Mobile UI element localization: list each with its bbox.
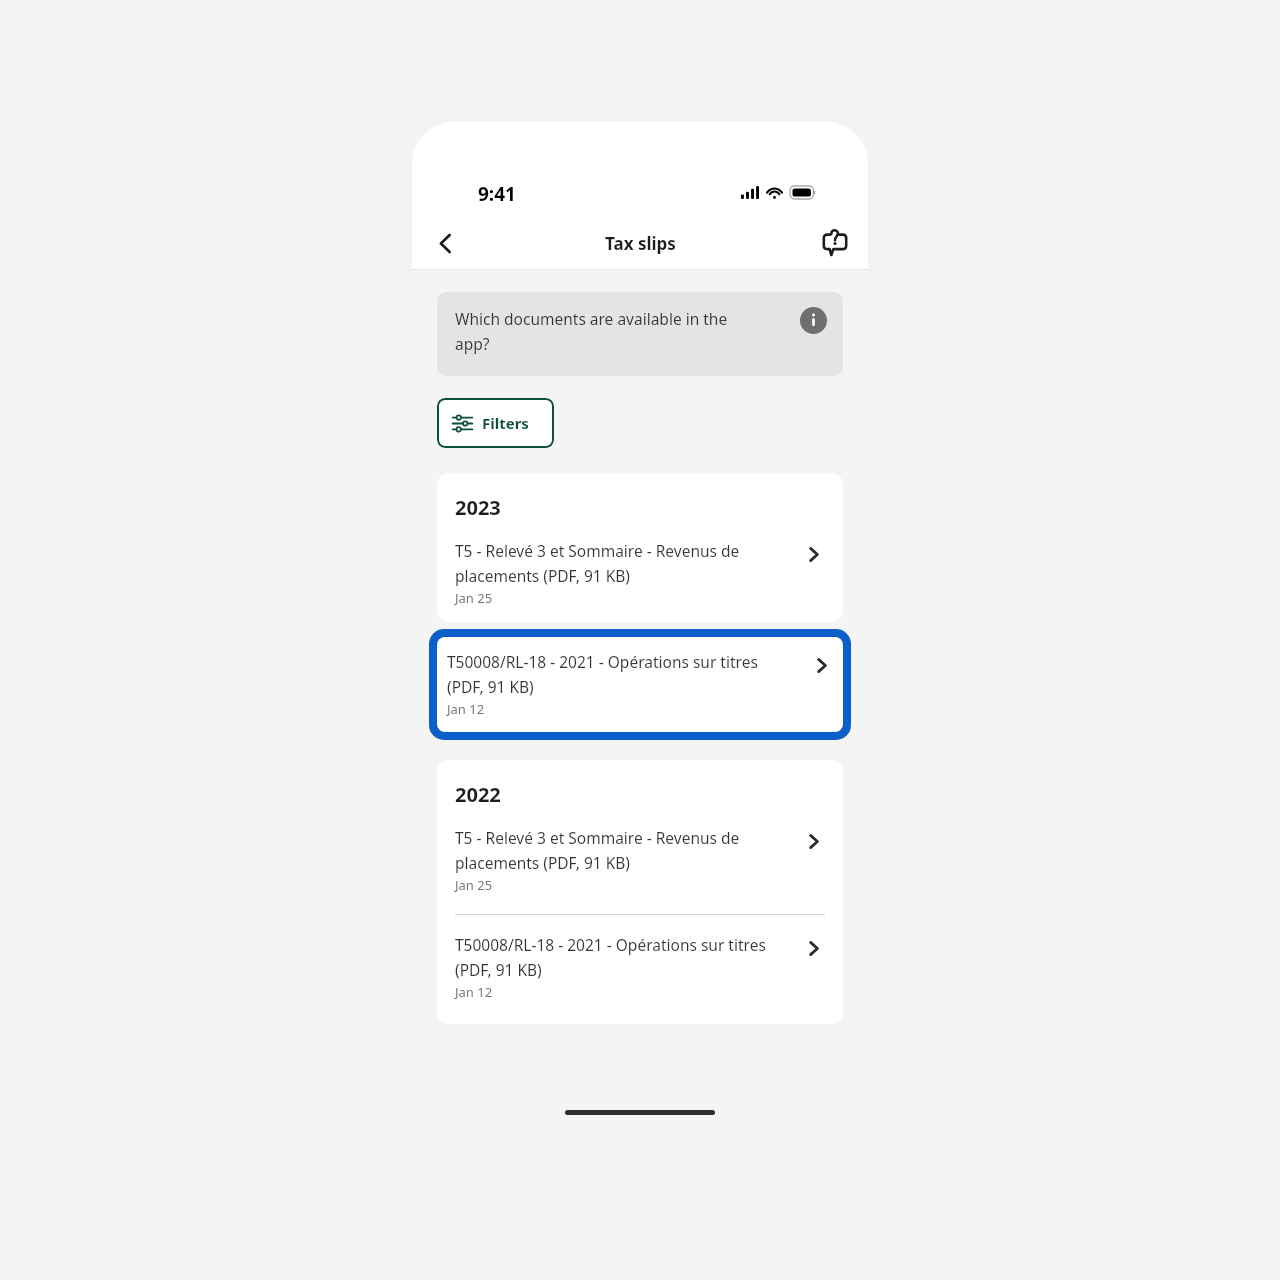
button[interactable]: T50008/RL-18 - 2021 - Opérations sur tit… bbox=[429, 629, 851, 740]
button[interactable]: T50008/RL-18 - 2021 - Opérations sur tit… bbox=[437, 651, 843, 718]
button[interactable]: Back bbox=[423, 221, 467, 265]
button[interactable]: T5 - Relevé 3 et Sommaire - Revenus de p… bbox=[437, 827, 843, 894]
staticText: T5 - Relevé 3 et Sommaire - Revenus de p… bbox=[455, 540, 740, 587]
staticText: 2022 bbox=[455, 781, 501, 808]
staticText: Filters bbox=[482, 413, 529, 433]
other: Information bbox=[800, 307, 827, 334]
staticText: Jan 12 bbox=[455, 983, 493, 1001]
button[interactable]: Help bbox=[813, 221, 857, 265]
staticText: Jan 12 bbox=[447, 700, 485, 718]
staticText: Tax slips bbox=[605, 232, 676, 255]
staticText: Which documents are available in the app… bbox=[455, 308, 728, 355]
button[interactable]: Which documents are available in the app… bbox=[437, 292, 843, 376]
staticText: Jan 25 bbox=[455, 589, 493, 607]
button[interactable]: T5 - Relevé 3 et Sommaire - Revenus de p… bbox=[437, 540, 843, 607]
button[interactable]: T50008/RL-18 - 2021 - Opérations sur tit… bbox=[437, 934, 843, 1001]
staticText: 2023 bbox=[455, 494, 501, 521]
staticText: 9:41 bbox=[478, 181, 516, 207]
staticText: T5 - Relevé 3 et Sommaire - Revenus de p… bbox=[455, 827, 740, 874]
staticText: T50008/RL-18 - 2021 - Opérations sur tit… bbox=[447, 651, 758, 698]
staticText: Jan 25 bbox=[455, 876, 493, 894]
staticText: T50008/RL-18 - 2021 - Opérations sur tit… bbox=[455, 934, 766, 981]
button[interactable]: Filters bbox=[437, 398, 554, 448]
